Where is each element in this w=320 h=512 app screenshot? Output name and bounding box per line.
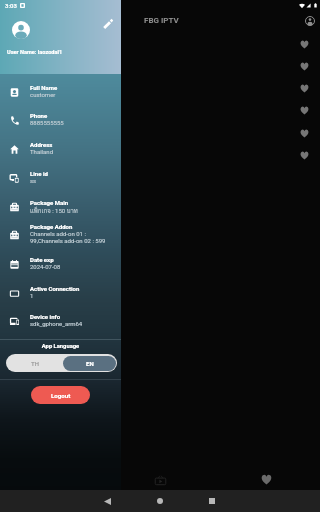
button[interactable]: Package Addon [0,223,121,250]
button[interactable]: Date exp [0,256,121,274]
button[interactable]: Live TV [150,470,170,490]
button[interactable]: Favorite [294,123,314,143]
button[interactable]: Back [97,491,117,511]
button[interactable]: Favorite [294,34,314,54]
button[interactable]: Logout [31,386,90,404]
button[interactable]: Home [150,491,170,511]
staticText: User Name: laozodal1 [7,49,63,56]
button[interactable]: TH [6,354,63,372]
button[interactable]: Account [300,11,320,31]
button[interactable]: Recents [202,491,222,511]
button[interactable]: Phone [0,112,121,130]
staticText: EN [86,360,94,367]
staticText: 8885555555 [30,119,64,126]
button[interactable]: Full Name [0,84,121,102]
staticText: 99,Channels add-on 02 : 599 [30,237,106,244]
button[interactable]: Device info [0,313,121,331]
staticText: Logout [51,392,71,399]
staticText: Phone [30,112,48,119]
button[interactable]: Line id [0,170,121,188]
button[interactable]: EN [63,356,116,371]
button[interactable]: Favorite [294,78,314,98]
staticText: 1 [30,292,34,299]
staticText: Address [30,141,53,148]
staticText: FBG IPTV [144,16,179,25]
staticText: Device info [30,313,61,320]
button[interactable]: Favorite [294,100,314,120]
staticText: Package Main [30,199,69,206]
staticText: Active Connection [30,285,80,292]
staticText: App Language [0,343,121,350]
button[interactable]: Address [0,141,121,159]
button[interactable]: Edit profile [98,14,117,33]
staticText: Package Addon [30,223,73,230]
button[interactable]: Favorite [294,145,314,165]
staticText: 3:03 [5,2,17,9]
staticText: แพ็กเกจ : 150 บาท [30,206,78,216]
staticText: TH [31,360,39,367]
button[interactable]: Active Connection [0,285,121,303]
button[interactable]: Favorite [294,56,314,76]
staticText: 2024-07-08 [30,263,61,270]
button[interactable]: Favorites [256,469,276,489]
staticText: Channels add-on 01 : [30,230,86,237]
staticText: customer [30,91,56,98]
staticText: Line id [30,170,48,177]
staticText: Date exp [30,256,54,263]
staticText: ss [30,177,37,184]
button[interactable]: Package Main [0,199,121,217]
staticText: Thailand [30,148,54,155]
staticText: Full Name [30,84,58,91]
staticText: sdk_gphone_arm64 [30,320,83,327]
